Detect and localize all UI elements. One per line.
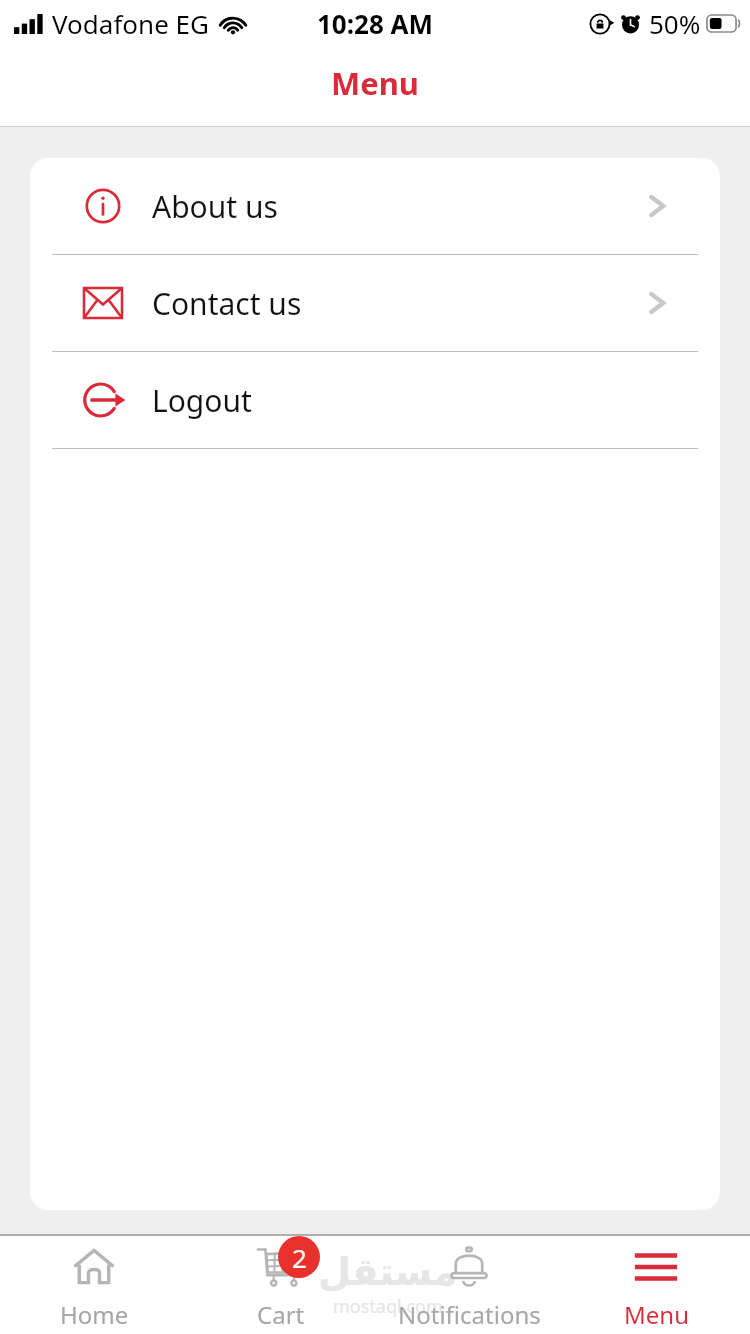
other: Cart bbox=[254, 1240, 308, 1294]
staticText: Contact us bbox=[152, 283, 302, 324]
staticText: 2 bbox=[292, 1240, 307, 1275]
staticText: Menu bbox=[624, 1298, 689, 1331]
staticText: Menu bbox=[0, 62, 750, 104]
staticText: 10:28 AM bbox=[317, 6, 434, 41]
other: Home bbox=[71, 1244, 117, 1290]
staticText: Notifications bbox=[398, 1298, 541, 1331]
staticText: Cart bbox=[257, 1298, 305, 1331]
staticText: 50% bbox=[649, 6, 701, 41]
staticText: Logout bbox=[152, 380, 252, 421]
button[interactable]: Cart bbox=[193, 1236, 369, 1334]
staticText: Vodafone EG bbox=[52, 6, 209, 41]
other: Notifications bbox=[447, 1245, 491, 1289]
button[interactable]: Contact us bbox=[30, 255, 720, 351]
button[interactable]: Home bbox=[6, 1236, 182, 1334]
button[interactable]: Menu bbox=[568, 1236, 744, 1334]
staticText: About us bbox=[152, 186, 278, 227]
other: Menu bbox=[633, 1249, 679, 1285]
staticText: mostaql.com bbox=[333, 1294, 443, 1319]
button[interactable]: Logout bbox=[30, 352, 720, 448]
button[interactable]: About us bbox=[30, 158, 720, 254]
staticText: مستقل bbox=[318, 1250, 457, 1294]
button[interactable]: Notifications bbox=[381, 1236, 557, 1334]
staticText: Home bbox=[60, 1298, 129, 1331]
